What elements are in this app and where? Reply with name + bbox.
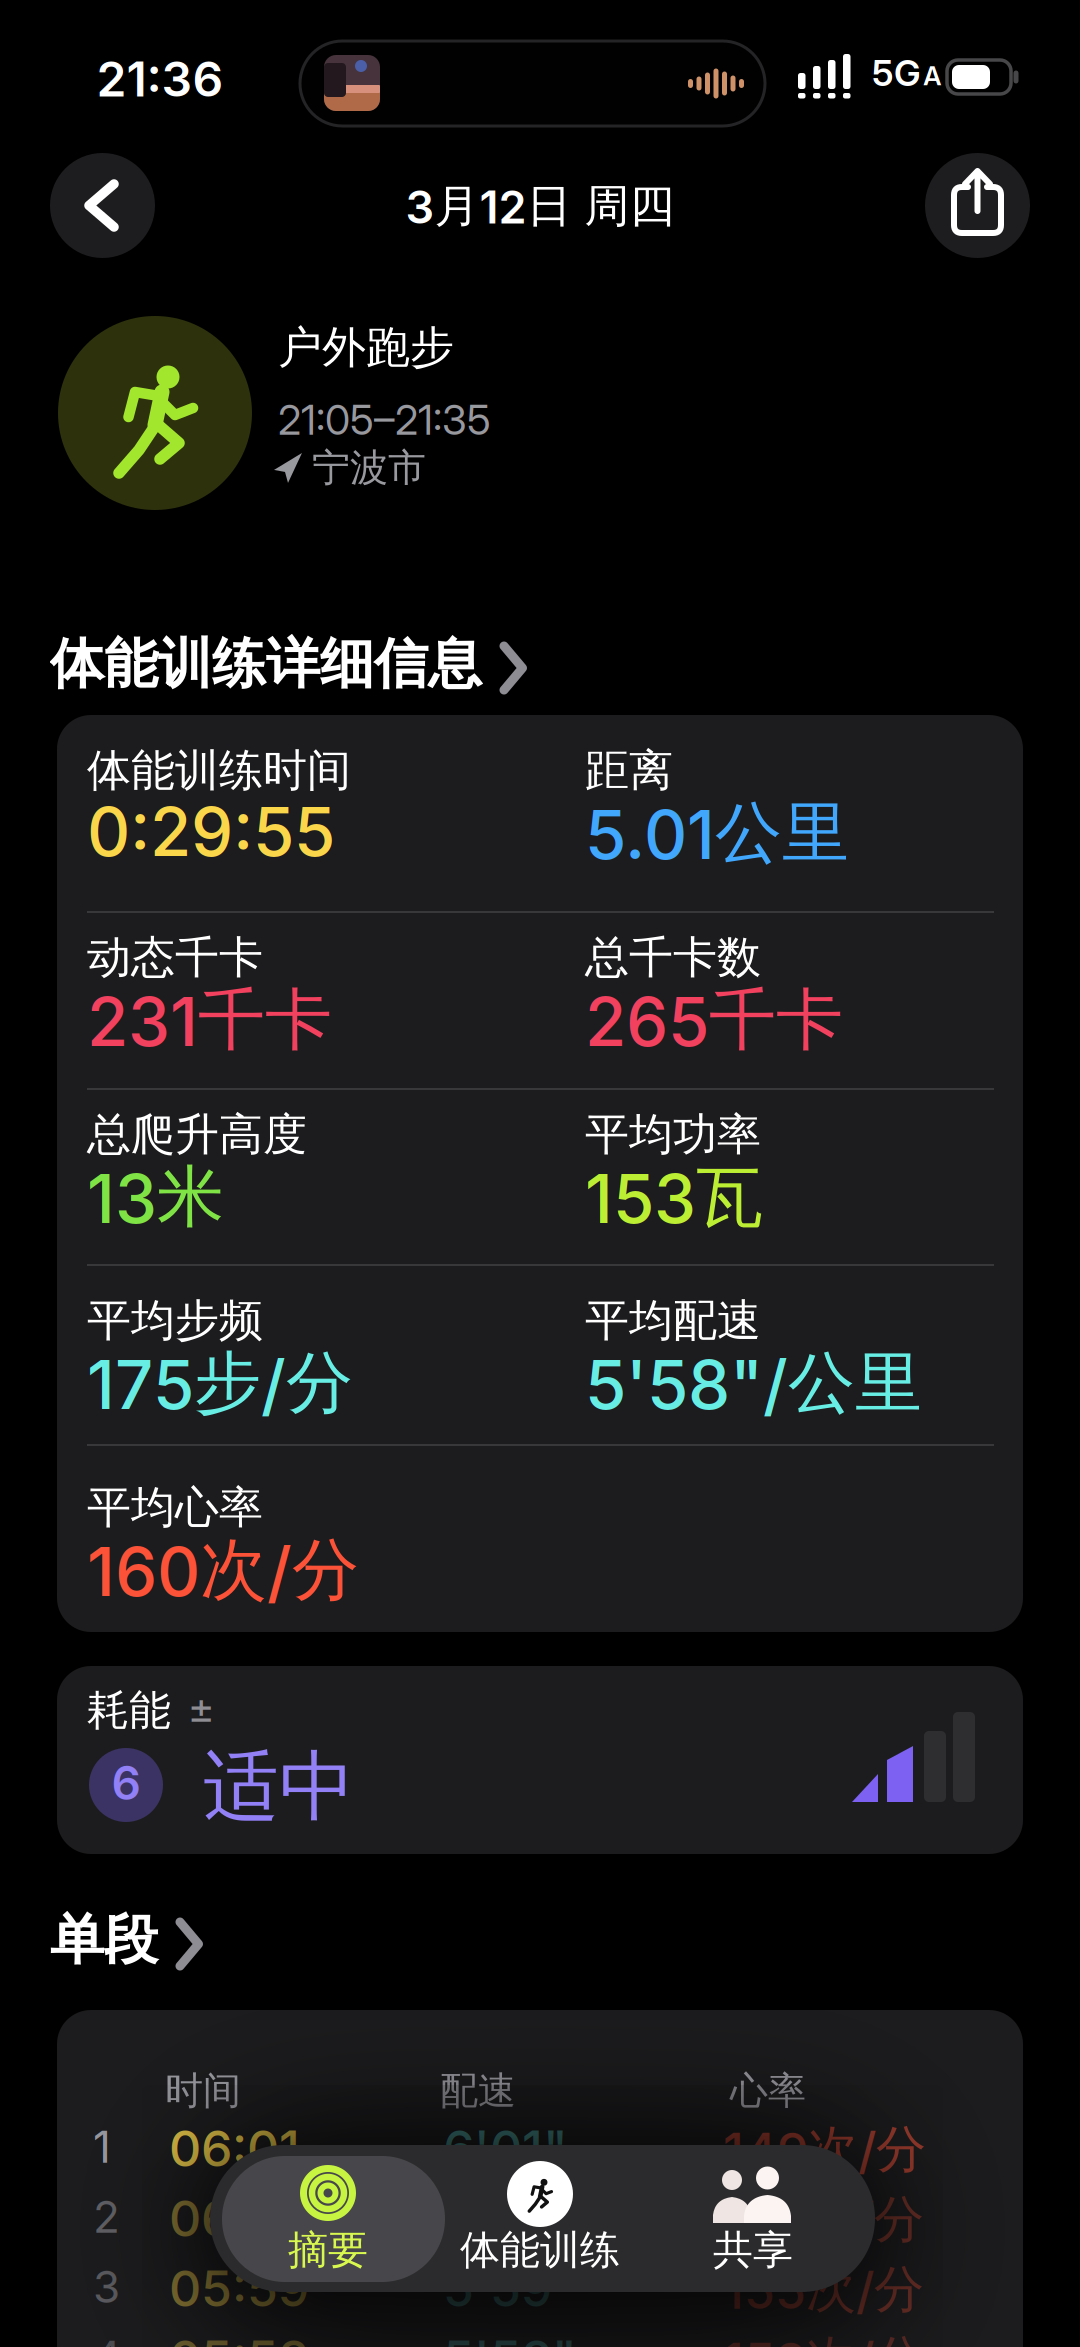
staticText: 时间 (165, 2067, 241, 2115)
staticText: 适中 (203, 1739, 355, 1835)
staticText: 体能训练时间 (87, 743, 351, 798)
staticText: 配速 (440, 2067, 516, 2115)
staticText: 153瓦 (585, 1155, 763, 1239)
staticText: 05:58 (169, 2328, 309, 2347)
staticText: 13米 (87, 1155, 224, 1239)
staticText: 160次/分 (87, 1528, 359, 1612)
staticText: 0:29:55 (87, 791, 335, 872)
staticText: 5'58" (443, 2328, 577, 2347)
staticText: 户外跑步 (278, 320, 454, 375)
staticText: 6'00" (443, 2188, 579, 2248)
staticText: 158次/分 (723, 2328, 924, 2347)
staticText: 平均功率 (585, 1107, 761, 1162)
button[interactable]: 体能训练详细信息 (50, 630, 526, 698)
staticText: 5.01公里 (585, 791, 849, 875)
staticText: 体能训练 (460, 2225, 620, 2275)
staticText: 心率 (730, 2067, 806, 2115)
button[interactable]: Share (925, 153, 1030, 258)
staticText: 耗能 (87, 1684, 171, 1737)
button[interactable]: 共享 (642, 2145, 864, 2292)
button[interactable]: Back (50, 153, 155, 258)
staticText: 共享 (713, 2225, 793, 2275)
staticText: 3 (93, 2260, 120, 2313)
staticText: 体能训练详细信息 (50, 630, 482, 698)
staticText: 2 (93, 2190, 120, 2243)
staticText: 摘要 (288, 2225, 368, 2275)
staticText: 155次/分 (723, 2258, 924, 2321)
staticText: 231千卡 (87, 978, 332, 1062)
button[interactable]: 体能训练 (429, 2145, 651, 2292)
staticText: 21:05–21:35 (278, 395, 491, 445)
staticText: 6'01" (443, 2118, 568, 2178)
staticText: 3月12日 周四 (405, 178, 674, 235)
staticText: 距离 (585, 743, 673, 798)
staticText: 总爬升高度 (87, 1107, 307, 1162)
staticText: 5'59" (443, 2258, 577, 2318)
staticText: 06:02 (169, 2188, 310, 2248)
staticText: 5'58"/公里 (585, 1341, 922, 1425)
staticText: 149次/分 (723, 2118, 926, 2181)
staticText: 6 (111, 1755, 140, 1811)
staticText: ± (188, 1682, 214, 1733)
button[interactable]: 摘要 (217, 2145, 439, 2292)
staticText: A (923, 60, 942, 91)
staticText: 4 (93, 2330, 121, 2347)
staticText: 21:36 (96, 50, 223, 108)
staticText: 平均心率 (87, 1480, 263, 1535)
staticText: 1 (93, 2120, 111, 2173)
staticText: 5G (872, 51, 921, 95)
staticText: 单段 (50, 1906, 158, 1974)
staticText: 宁波市 (312, 444, 426, 492)
staticText: 05:59 (169, 2258, 309, 2318)
staticText: 动态千卡 (87, 930, 263, 985)
staticText: 平均步频 (87, 1293, 263, 1348)
staticText: 265千卡 (585, 978, 843, 1062)
staticText: 175步/分 (87, 1341, 353, 1425)
button[interactable]: 单段 (50, 1906, 202, 1974)
staticText: 总千卡数 (585, 930, 761, 985)
staticText: 平均配速 (585, 1293, 761, 1348)
staticText: 152次/分 (723, 2188, 924, 2251)
staticText: 06:01 (169, 2118, 300, 2178)
